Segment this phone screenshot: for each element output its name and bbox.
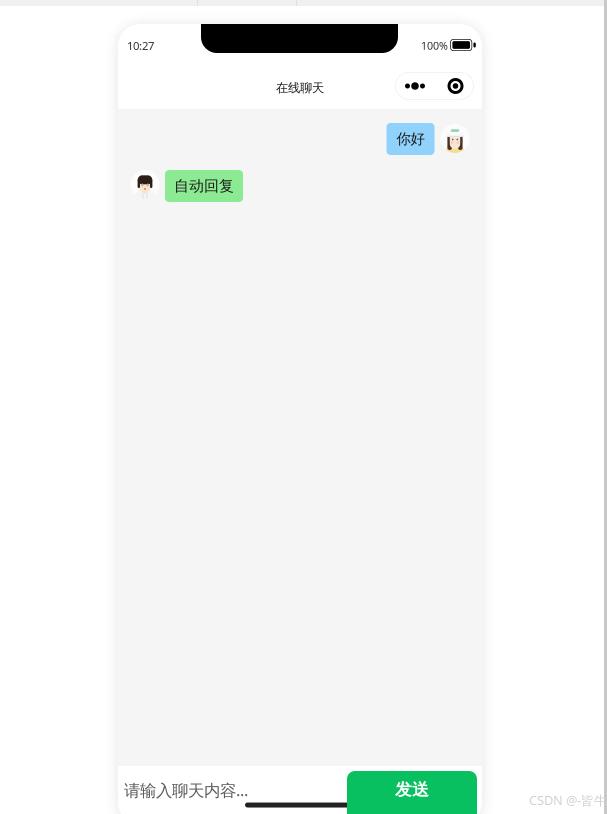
staticText: 你好 — [396, 130, 424, 148]
staticText: 自动回复 — [174, 177, 234, 195]
button[interactable]: 发送 — [347, 771, 477, 814]
staticText: 100% — [421, 38, 448, 53]
staticText: CSDN @-皆牛 — [529, 791, 607, 809]
staticText: 10:27 — [127, 38, 154, 53]
staticText: 请输入聊天内容... — [124, 779, 248, 801]
staticText: 发送 — [395, 779, 429, 800]
button[interactable]: Mini program menu — [395, 72, 474, 100]
button[interactable]: 请输入聊天内容... — [118, 768, 346, 812]
staticText: 在线聊天 — [276, 80, 324, 96]
